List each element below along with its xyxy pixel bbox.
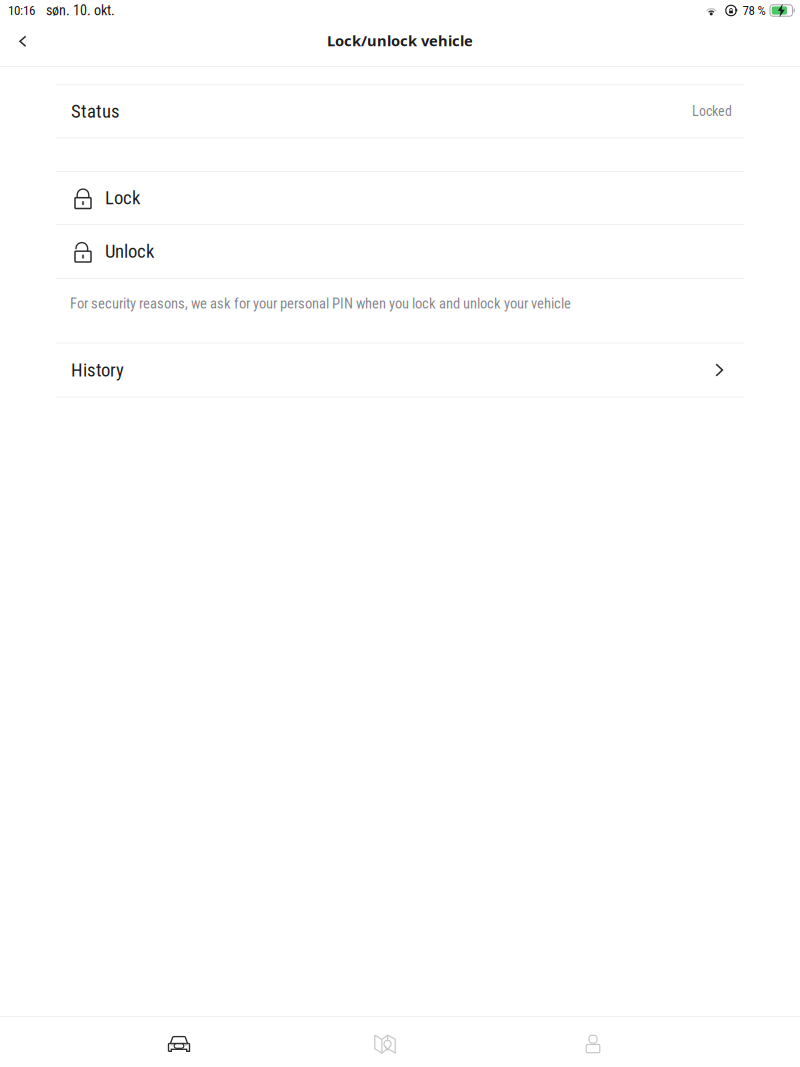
button[interactable]: Lock [56,172,744,224]
staticText: Unlock [105,240,154,262]
staticText: Lock [105,187,140,209]
button[interactable]: Profile [564,1019,622,1065]
staticText: History [71,359,124,381]
staticText: 78 % [742,3,765,18]
staticText: For security reasons, we ask for your pe… [70,295,571,312]
staticText: Locked [692,103,732,119]
button[interactable]: Vehicle [150,1019,208,1065]
staticText: søn. 10. okt. [46,2,115,19]
button[interactable]: Back [0,21,43,66]
button[interactable]: History [56,343,744,396]
button[interactable]: Unlock [56,225,744,278]
button[interactable]: Map [356,1019,414,1065]
staticText: Status [71,100,120,122]
staticText: 10:16 [8,3,35,18]
staticText: Lock/unlock vehicle [327,30,473,50]
